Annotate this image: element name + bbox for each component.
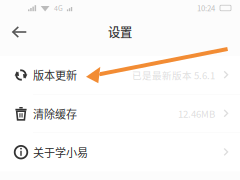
staticText: 版本更新 <box>33 67 77 83</box>
button[interactable]: Back <box>0 16 27 48</box>
staticText: 12.46MB <box>178 107 215 120</box>
staticText: 关于学小易 <box>33 144 88 160</box>
button[interactable]: 版本更新 <box>0 56 240 94</box>
staticText: 10:24 <box>197 2 215 14</box>
staticText: 设置 <box>108 23 132 41</box>
staticText: 清除缓存 <box>33 106 77 122</box>
staticText: 4G <box>54 3 63 13</box>
button[interactable]: 关于学小易 <box>0 133 240 171</box>
button[interactable]: 清除缓存 <box>0 95 240 133</box>
staticText: 已是最新版本 5.6.1 <box>132 68 215 82</box>
